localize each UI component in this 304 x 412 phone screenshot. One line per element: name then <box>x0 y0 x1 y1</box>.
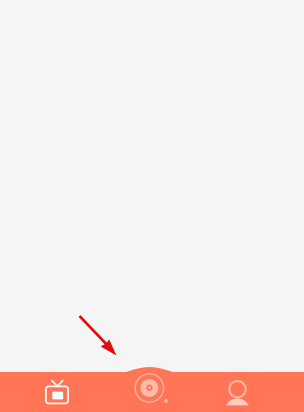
button[interactable]: Profile <box>203 372 304 412</box>
button[interactable]: Record <box>101 372 203 412</box>
button[interactable]: Shows <box>0 372 101 412</box>
